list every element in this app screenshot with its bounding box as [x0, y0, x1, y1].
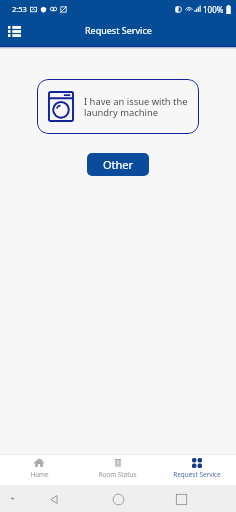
- button[interactable]: I have an issue with the laundry machine: [37, 79, 199, 134]
- button[interactable]: Home: [0, 455, 78, 485]
- button[interactable]: Other: [87, 153, 149, 176]
- staticText: Room Status: [98, 470, 137, 479]
- staticText: Request Service: [85, 24, 152, 36]
- button[interactable]: Home: [107, 488, 129, 510]
- staticText: 2:53: [12, 4, 27, 14]
- button[interactable]: Request Service: [157, 455, 236, 485]
- staticText: 100%: [203, 4, 224, 15]
- button[interactable]: Menu: [2, 18, 26, 44]
- button[interactable]: Room Status: [78, 455, 157, 485]
- button[interactable]: Recents: [170, 488, 192, 510]
- staticText: Other: [103, 157, 134, 172]
- button[interactable]: Back: [44, 488, 66, 510]
- staticText: Request Service: [173, 470, 221, 479]
- staticText: Home: [30, 470, 49, 479]
- staticText: I have an issue with the laundry machine: [84, 95, 188, 118]
